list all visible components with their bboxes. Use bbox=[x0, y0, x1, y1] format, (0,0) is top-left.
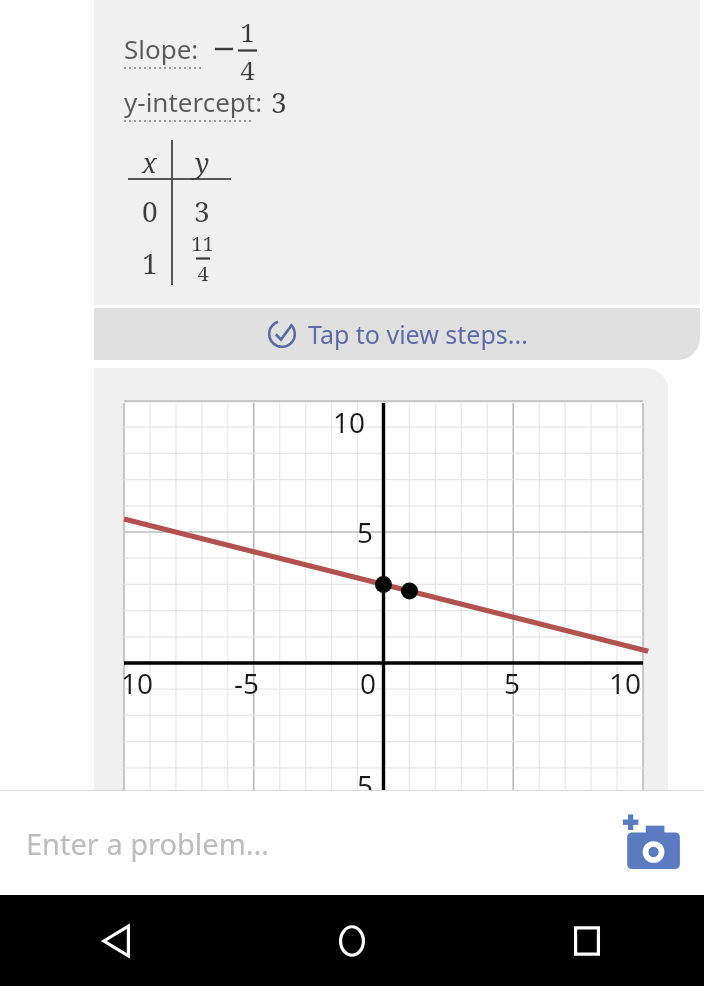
button[interactable]: Scan problem with camera bbox=[610, 801, 694, 885]
staticText: 10 bbox=[609, 664, 642, 702]
button[interactable]: Tap to view steps... bbox=[94, 308, 700, 360]
staticText: 1 bbox=[240, 14, 255, 49]
button[interactable]: Recents bbox=[469, 895, 704, 986]
staticText: y bbox=[195, 144, 210, 181]
button[interactable]: Enter a problem... bbox=[0, 791, 620, 895]
staticText: 10 bbox=[333, 403, 366, 441]
staticText: 1 bbox=[142, 244, 158, 282]
staticText: 4 bbox=[240, 52, 255, 87]
staticText: 11 bbox=[191, 230, 214, 257]
staticText: x bbox=[142, 144, 157, 181]
staticText: 5 bbox=[504, 664, 521, 702]
staticText: 4 bbox=[197, 260, 209, 287]
staticText: y-intercept: bbox=[124, 84, 263, 119]
staticText: -5 bbox=[234, 664, 260, 702]
staticText: Tap to view steps... bbox=[308, 317, 528, 351]
staticText: Enter a problem... bbox=[26, 824, 270, 863]
staticText: 5 bbox=[357, 513, 374, 551]
staticText: 0 bbox=[360, 664, 377, 702]
staticText: 3 bbox=[271, 83, 287, 121]
staticText: 10 bbox=[121, 664, 154, 702]
staticText: 0 bbox=[142, 192, 158, 230]
button[interactable]: Back bbox=[0, 895, 234, 986]
staticText: 3 bbox=[194, 192, 210, 230]
staticText: 5 bbox=[357, 766, 374, 804]
button[interactable]: Home bbox=[234, 895, 469, 986]
staticText: Slope: bbox=[124, 31, 199, 66]
